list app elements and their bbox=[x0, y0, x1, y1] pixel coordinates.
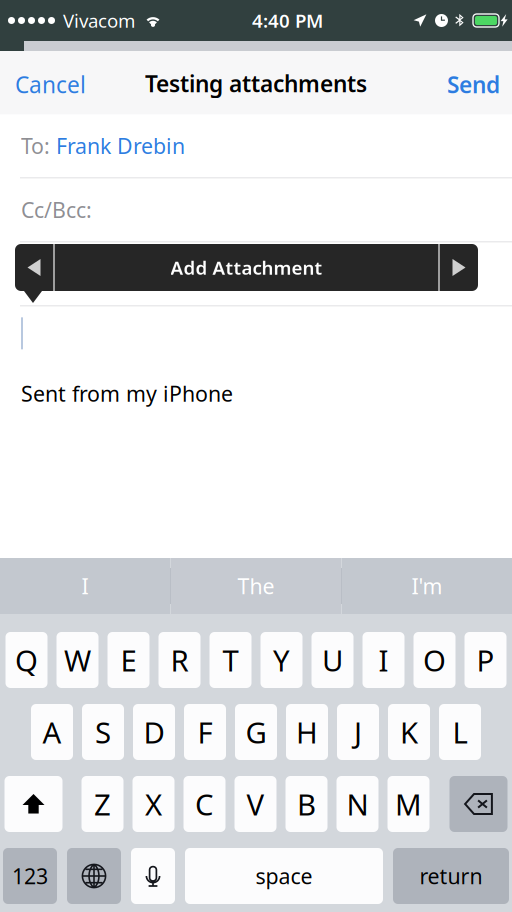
button[interactable]: Next bbox=[440, 244, 478, 291]
button[interactable]: Cancel bbox=[0, 52, 101, 116]
staticText: R bbox=[170, 640, 188, 679]
button[interactable]: N bbox=[336, 776, 378, 832]
staticText: return bbox=[419, 862, 482, 890]
staticText: P bbox=[476, 640, 494, 679]
staticText: I'm bbox=[411, 572, 442, 600]
staticText: X bbox=[145, 784, 162, 823]
button[interactable]: Y bbox=[260, 632, 302, 688]
staticText: E bbox=[120, 640, 136, 679]
button[interactable]: K bbox=[388, 704, 430, 760]
button[interactable]: M bbox=[387, 776, 429, 832]
staticText: A bbox=[42, 712, 61, 751]
button[interactable]: B bbox=[285, 776, 327, 832]
staticText: K bbox=[400, 712, 418, 751]
staticText: Add Attachment bbox=[170, 255, 322, 280]
staticText: L bbox=[452, 712, 467, 751]
button[interactable]: Dictation bbox=[131, 848, 175, 904]
button[interactable]: Next keyboard bbox=[67, 848, 121, 904]
staticText: I bbox=[378, 640, 388, 679]
button[interactable]: R bbox=[158, 632, 200, 688]
button[interactable]: Z bbox=[81, 776, 123, 832]
button[interactable]: 123 bbox=[3, 848, 57, 904]
staticText: Cancel bbox=[15, 69, 86, 99]
staticText: Cc/Bcc: bbox=[21, 196, 92, 224]
button[interactable]: L bbox=[439, 704, 481, 760]
staticText: N bbox=[346, 784, 368, 823]
button[interactable]: Shift bbox=[4, 776, 62, 832]
button[interactable]: I bbox=[362, 632, 404, 688]
button[interactable]: T bbox=[209, 632, 251, 688]
button[interactable]: J bbox=[337, 704, 379, 760]
button[interactable]: H bbox=[286, 704, 328, 760]
staticText: Vivacom bbox=[63, 8, 135, 33]
button[interactable]: I bbox=[0, 558, 170, 614]
staticText: O bbox=[423, 640, 446, 679]
button[interactable]: D bbox=[133, 704, 175, 760]
button[interactable]: W bbox=[56, 632, 98, 688]
button[interactable]: O bbox=[413, 632, 455, 688]
button[interactable]: return bbox=[393, 848, 509, 904]
button[interactable]: F bbox=[184, 704, 226, 760]
staticText: J bbox=[354, 712, 362, 751]
staticText: C bbox=[195, 784, 214, 823]
button[interactable]: space bbox=[185, 848, 383, 904]
button[interactable]: S bbox=[82, 704, 124, 760]
staticText: S bbox=[95, 712, 111, 751]
staticText: Sent from my iPhone bbox=[21, 379, 233, 408]
button[interactable]: Send bbox=[435, 52, 512, 116]
button[interactable]: A bbox=[31, 704, 73, 760]
staticText: Z bbox=[94, 784, 111, 823]
staticText: V bbox=[246, 784, 264, 823]
button[interactable]: Delete bbox=[449, 776, 507, 832]
staticText: D bbox=[143, 712, 164, 751]
button[interactable]: U bbox=[311, 632, 353, 688]
button[interactable]: Add Attachment bbox=[55, 244, 438, 291]
staticText: H bbox=[296, 712, 318, 751]
button[interactable]: P bbox=[464, 632, 506, 688]
staticText: space bbox=[255, 862, 312, 890]
staticText: Testing attachments bbox=[145, 68, 367, 98]
staticText: To: bbox=[21, 132, 56, 160]
staticText: I bbox=[81, 572, 88, 600]
staticText: Frank Drebin bbox=[56, 132, 185, 160]
button[interactable]: C bbox=[183, 776, 225, 832]
button[interactable]: E bbox=[107, 632, 149, 688]
staticText: The bbox=[237, 572, 274, 600]
button[interactable]: Q bbox=[5, 632, 47, 688]
staticText: 4:40 PM bbox=[252, 8, 323, 33]
button[interactable]: G bbox=[235, 704, 277, 760]
staticText: Q bbox=[15, 640, 38, 679]
staticText: M bbox=[395, 784, 422, 823]
staticText: Send bbox=[447, 69, 500, 99]
staticText: U bbox=[322, 640, 343, 679]
button[interactable]: Previous bbox=[15, 244, 53, 291]
staticText: 123 bbox=[12, 862, 48, 890]
staticText: Y bbox=[273, 640, 290, 679]
staticText: W bbox=[64, 640, 91, 679]
button[interactable]: I'm bbox=[342, 558, 512, 614]
staticText: B bbox=[297, 784, 316, 823]
staticText: F bbox=[197, 712, 212, 751]
button[interactable]: V bbox=[234, 776, 276, 832]
button[interactable]: The bbox=[171, 558, 341, 614]
staticText: T bbox=[222, 640, 238, 679]
staticText: G bbox=[245, 712, 266, 751]
button[interactable]: X bbox=[132, 776, 174, 832]
